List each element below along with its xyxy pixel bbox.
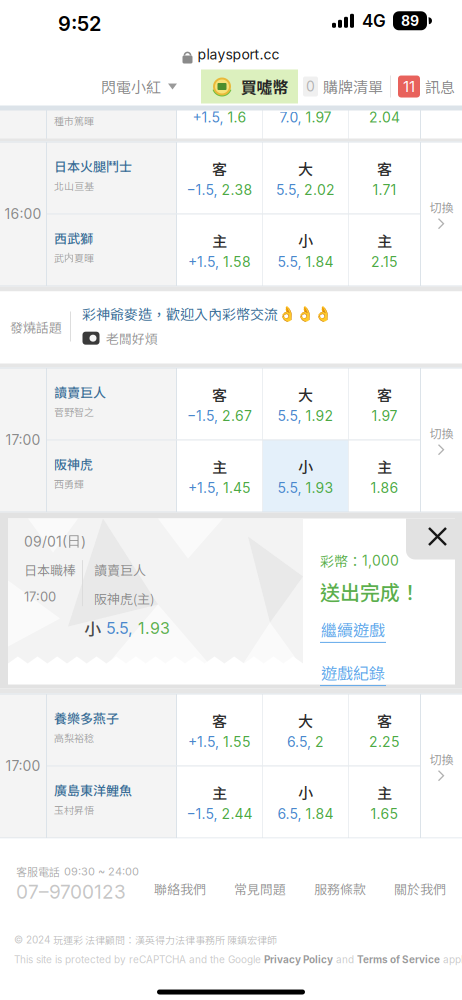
staticText: 武内夏暉 [54, 250, 94, 265]
staticText: +1.5, [188, 733, 223, 750]
staticText: and [333, 953, 357, 966]
staticText: 5.5, [277, 479, 305, 496]
button[interactable]: 主 [349, 214, 420, 285]
staticText: 讀賣巨人 [94, 560, 146, 579]
button[interactable]: 客 [349, 142, 420, 213]
staticText: 日本火腿鬥士 [54, 156, 132, 175]
staticText: 切換 [429, 198, 453, 216]
staticText: 客 [212, 710, 227, 731]
staticText: 大 [298, 384, 313, 405]
staticText: 5.5, [106, 618, 133, 638]
button[interactable]: 0 [303, 69, 387, 103]
staticText: 客 [377, 158, 392, 179]
staticText: 5.5, [276, 181, 304, 198]
staticText: Terms of Service [357, 953, 440, 966]
staticText: 小 [84, 616, 101, 640]
staticText: 切換 [429, 750, 453, 768]
staticText: 廣島東洋鯉魚 [54, 780, 132, 799]
staticText: 客 [377, 710, 392, 731]
button[interactable]: 切換 [421, 142, 462, 285]
button[interactable]: 主 [177, 214, 262, 285]
staticText: 09:30 ~ 24:00 [64, 865, 139, 878]
button[interactable]: 閃電小紅 [101, 69, 181, 103]
staticText: 2.38 [221, 181, 252, 198]
staticText: 6.5, [287, 733, 315, 750]
staticText: 小 [298, 230, 313, 251]
staticText: 11 [403, 77, 415, 95]
staticText: 1.45 [223, 479, 251, 496]
staticText: 送出完成！ [320, 577, 420, 606]
button[interactable]: 主 [349, 440, 420, 511]
button[interactable]: Close [406, 518, 462, 559]
staticText: 彩神爺麥造，歡迎入內彩幣交流 [82, 303, 278, 324]
button[interactable]: 主 [349, 766, 420, 837]
button[interactable]: 小 [263, 440, 348, 511]
staticText: 1.97 [371, 407, 397, 424]
staticText: 閃電小紅 [101, 76, 161, 97]
button[interactable]: 主 [177, 440, 262, 511]
button[interactable]: 小 [263, 766, 348, 837]
staticText: 主 [377, 230, 392, 251]
staticText: 1.92 [305, 407, 333, 424]
button[interactable]: 聯絡我們 [150, 876, 210, 900]
button[interactable]: 主 [177, 766, 262, 837]
staticText: 老闆好煩 [106, 329, 158, 348]
staticText: Privacy Policy [264, 953, 333, 966]
staticText: 大 [298, 710, 313, 731]
button[interactable]: 切換 [421, 694, 462, 837]
staticText: 高梨裕稔 [54, 730, 94, 745]
staticText: 玉村昇悟 [54, 802, 94, 817]
staticText: +1.5, [192, 109, 227, 126]
button[interactable]: 繼續遊戲 [320, 618, 386, 643]
button[interactable]: 客 [177, 142, 262, 213]
staticText: 2.04 [369, 109, 400, 126]
staticText: 訊息 [425, 76, 455, 97]
staticText: 阪神虎(主) [94, 589, 154, 608]
staticText: 北山亘基 [54, 178, 94, 193]
button[interactable]: 客 [177, 368, 262, 439]
staticText: 17:00 [5, 431, 40, 448]
staticText: 買噓幣 [240, 75, 288, 98]
staticText: 4G [362, 10, 386, 31]
button[interactable]: 切換 [421, 368, 462, 511]
staticText: 西勇輝 [54, 476, 84, 491]
staticText: 種市篤暉 [54, 113, 94, 128]
staticText: 切換 [429, 424, 453, 442]
staticText: +1.5, [188, 253, 223, 270]
staticText: 主 [377, 782, 392, 803]
staticText: 大 [298, 158, 313, 179]
button[interactable]: 小 [263, 214, 348, 285]
staticText: 5.5, [277, 407, 305, 424]
staticText: 17:00 [24, 589, 56, 605]
staticText: 1.97 [305, 109, 331, 126]
button[interactable]: 11 [398, 69, 456, 103]
button[interactable]: 客 [349, 368, 420, 439]
staticText: 9:52 [58, 11, 101, 36]
staticText: 客服電話 [16, 863, 60, 879]
staticText: 1.93 [138, 618, 170, 638]
staticText: 1.84 [305, 805, 333, 822]
staticText: 2 [315, 733, 324, 750]
button[interactable]: 遊戲紀錄 [320, 661, 386, 686]
button[interactable]: 客 [349, 694, 420, 765]
button[interactable]: 大 [263, 368, 348, 439]
staticText: 服務條款 [314, 879, 366, 898]
staticText: 6.5, [277, 805, 305, 822]
staticText: 玩運彩 法律顧問：漢英得力法律事務所 陳鎮宏律師 [53, 932, 277, 947]
button[interactable]: 客 [177, 694, 262, 765]
button[interactable]: 買噓幣 [201, 69, 298, 103]
staticText: 小 [298, 456, 313, 477]
button[interactable]: 大 [263, 694, 348, 765]
staticText: 1.65 [370, 805, 398, 822]
staticText: 彩幣： [320, 550, 362, 571]
button[interactable]: 大 [263, 142, 348, 213]
button[interactable]: 常見問題 [230, 876, 290, 900]
staticText: −1.5, [186, 181, 221, 198]
staticText: 小 [298, 782, 313, 803]
staticText: 16:00 [4, 205, 41, 222]
staticText: 購牌清單 [323, 76, 383, 97]
button[interactable]: 服務條款 [310, 876, 370, 900]
button[interactable]: 關於我們 [390, 876, 450, 900]
staticText: 客 [212, 158, 227, 179]
staticText: 常見問題 [234, 879, 286, 898]
